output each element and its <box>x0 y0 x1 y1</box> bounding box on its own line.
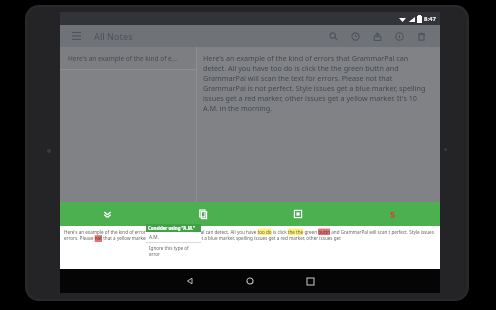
button[interactable]: Here's an example of the kind of errors … <box>60 226 196 269</box>
button[interactable]: Ignore this type of error <box>146 243 201 258</box>
button[interactable]: Copy <box>155 202 250 226</box>
staticText: A.M. <box>149 234 159 241</box>
button[interactable]: Info <box>388 25 410 47</box>
staticText: 5 <box>390 208 396 220</box>
button[interactable]: Recent apps <box>280 269 340 293</box>
button[interactable]: Errors <box>345 202 440 226</box>
button[interactable]: History <box>344 25 366 47</box>
button[interactable]: Search <box>322 25 344 47</box>
button[interactable]: Here's an example of the kind of e... <box>60 47 196 69</box>
button[interactable]: A.M. <box>146 232 201 242</box>
button[interactable]: Select all <box>250 202 345 226</box>
button[interactable]: rPal can detect. All you have too do is … <box>196 226 440 269</box>
staticText: rPal can detect. All you have too do is … <box>196 229 436 242</box>
staticText: Ignore this type of error <box>149 245 189 256</box>
staticText: Here's an example of the kind of errors … <box>203 53 430 113</box>
staticText: Consider using "A.M." <box>148 225 196 231</box>
button[interactable]: Here's an example of the kind of errors … <box>197 47 440 202</box>
button[interactable]: Share <box>366 25 388 47</box>
button[interactable]: Home <box>220 269 280 293</box>
button[interactable]: Open navigation drawer <box>68 28 84 44</box>
button[interactable]: Back <box>160 269 220 293</box>
staticText: 8:47 <box>424 15 436 23</box>
staticText: All Notes <box>94 30 133 42</box>
button[interactable]: Check grammar <box>60 202 155 226</box>
staticText: Here's an example of the kind of errors … <box>64 229 193 242</box>
staticText: Here's an example of the kind of e... <box>68 54 177 63</box>
button[interactable]: Delete <box>410 25 432 47</box>
